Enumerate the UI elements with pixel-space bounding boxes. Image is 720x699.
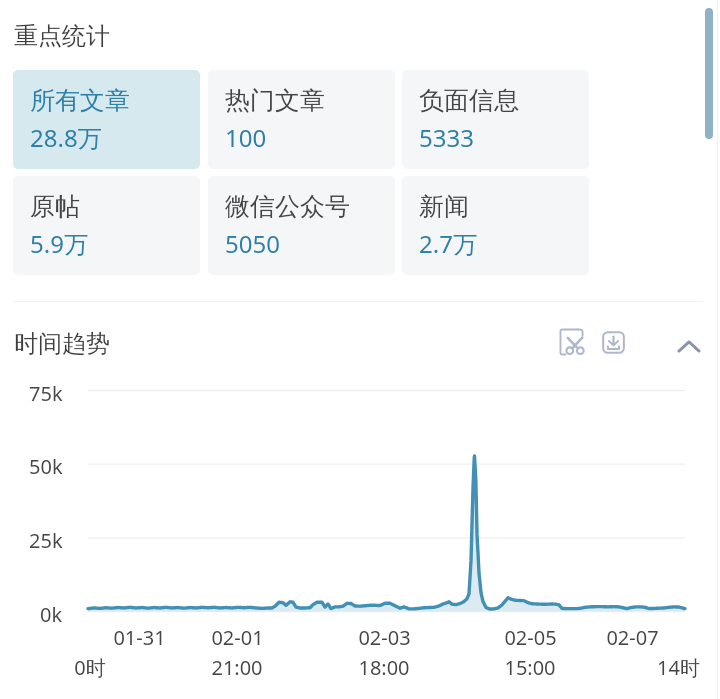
staticText: 15:00	[504, 654, 556, 681]
button[interactable]: 热门文章	[208, 70, 395, 169]
staticText: 02-07	[606, 624, 659, 651]
staticText: 时间趋势	[14, 329, 110, 359]
staticText: 所有文章	[30, 85, 130, 116]
button[interactable]: 负面信息	[402, 70, 589, 169]
button[interactable]: 时间趋势	[8, 324, 128, 362]
staticText: 5050	[225, 227, 280, 260]
button[interactable]: 原帖	[13, 176, 200, 275]
button[interactable]: 新闻	[402, 176, 589, 275]
staticText: 01-31	[113, 624, 166, 651]
staticText: 5333	[419, 121, 474, 154]
staticText: 负面信息	[419, 85, 519, 116]
staticText: 5.9万	[30, 227, 88, 260]
staticText: 重点统计	[14, 21, 110, 51]
staticText: 0时	[74, 654, 106, 681]
button[interactable]: Download chart	[593, 322, 633, 362]
staticText: 0k	[40, 601, 63, 628]
staticText: 02-01	[211, 624, 264, 651]
staticText: 02-05	[504, 624, 557, 651]
staticText: 新闻	[419, 191, 469, 222]
button[interactable]: 微信公众号	[208, 176, 395, 275]
staticText: 原帖	[30, 191, 80, 222]
staticText: 热门文章	[225, 85, 325, 116]
staticText: 02-03	[358, 624, 411, 651]
staticText: 2.7万	[419, 227, 477, 260]
staticText: 21:00	[211, 654, 263, 681]
button[interactable]: 所有文章	[13, 70, 200, 169]
staticText: 100	[225, 121, 267, 154]
staticText: 75k	[29, 380, 63, 407]
button[interactable]: Collapse section	[669, 322, 709, 362]
staticText: 28.8万	[30, 121, 102, 154]
staticText: 25k	[29, 527, 63, 554]
staticText: 微信公众号	[225, 191, 350, 222]
staticText: 18:00	[358, 654, 410, 681]
button[interactable]: Crop chart	[551, 322, 591, 362]
staticText: 14时	[657, 654, 700, 681]
staticText: 50k	[29, 453, 63, 480]
